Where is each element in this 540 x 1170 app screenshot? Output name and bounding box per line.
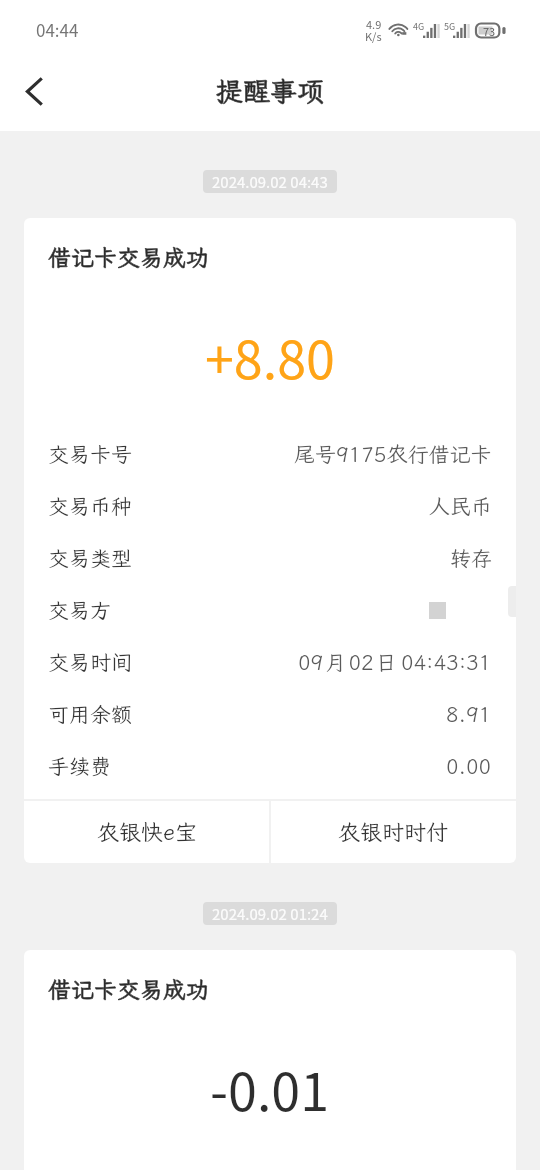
- staticText: 交易类型: [48, 544, 132, 572]
- button[interactable]: 农银快e宝: [24, 800, 269, 863]
- staticText: 手续费: [48, 752, 111, 780]
- staticText: 农银时时付: [338, 817, 449, 846]
- staticText: 73: [483, 23, 496, 38]
- staticText: 交易币种: [48, 492, 132, 520]
- staticText: 04:44: [36, 17, 79, 42]
- staticText: 5G: [444, 20, 456, 33]
- staticText: 0.00: [446, 752, 492, 780]
- staticText: K/s: [365, 28, 382, 44]
- button[interactable]: [24, 218, 516, 798]
- staticText: 8.91: [446, 700, 492, 728]
- button[interactable]: [24, 950, 516, 1170]
- staticText: 借记卡交易成功: [48, 974, 209, 1004]
- staticText: -0.01: [210, 1051, 330, 1126]
- staticText: 09 月 02 日 04:43:31: [298, 648, 492, 676]
- staticText: 4G: [413, 20, 425, 33]
- staticText: 借记卡交易成功: [48, 974, 209, 1004]
- staticText: 提醒事项: [216, 73, 324, 109]
- staticText: 农银快e宝: [97, 817, 197, 846]
- staticText: 借记卡交易成功: [48, 242, 209, 272]
- staticText: 人民币: [429, 492, 492, 520]
- staticText: 2024.09.02 04:43: [212, 171, 328, 193]
- staticText: 交易方: [48, 596, 111, 624]
- staticText: +8.80: [205, 319, 335, 394]
- staticText: 提醒事项: [216, 73, 324, 109]
- staticText: 交易时间: [48, 648, 132, 676]
- staticText: 借记卡交易成功: [48, 242, 209, 272]
- staticText: 2024.09.02 01:24: [212, 903, 328, 925]
- button[interactable]: Back: [4, 52, 66, 131]
- button[interactable]: 农银时时付: [271, 800, 516, 863]
- staticText: 尾号9175农行借记卡: [294, 440, 492, 468]
- staticText: 4.9: [366, 16, 382, 32]
- staticText: 转存: [450, 544, 492, 572]
- staticText: 交易卡号: [48, 440, 132, 468]
- staticText: 可用余额: [48, 700, 132, 728]
